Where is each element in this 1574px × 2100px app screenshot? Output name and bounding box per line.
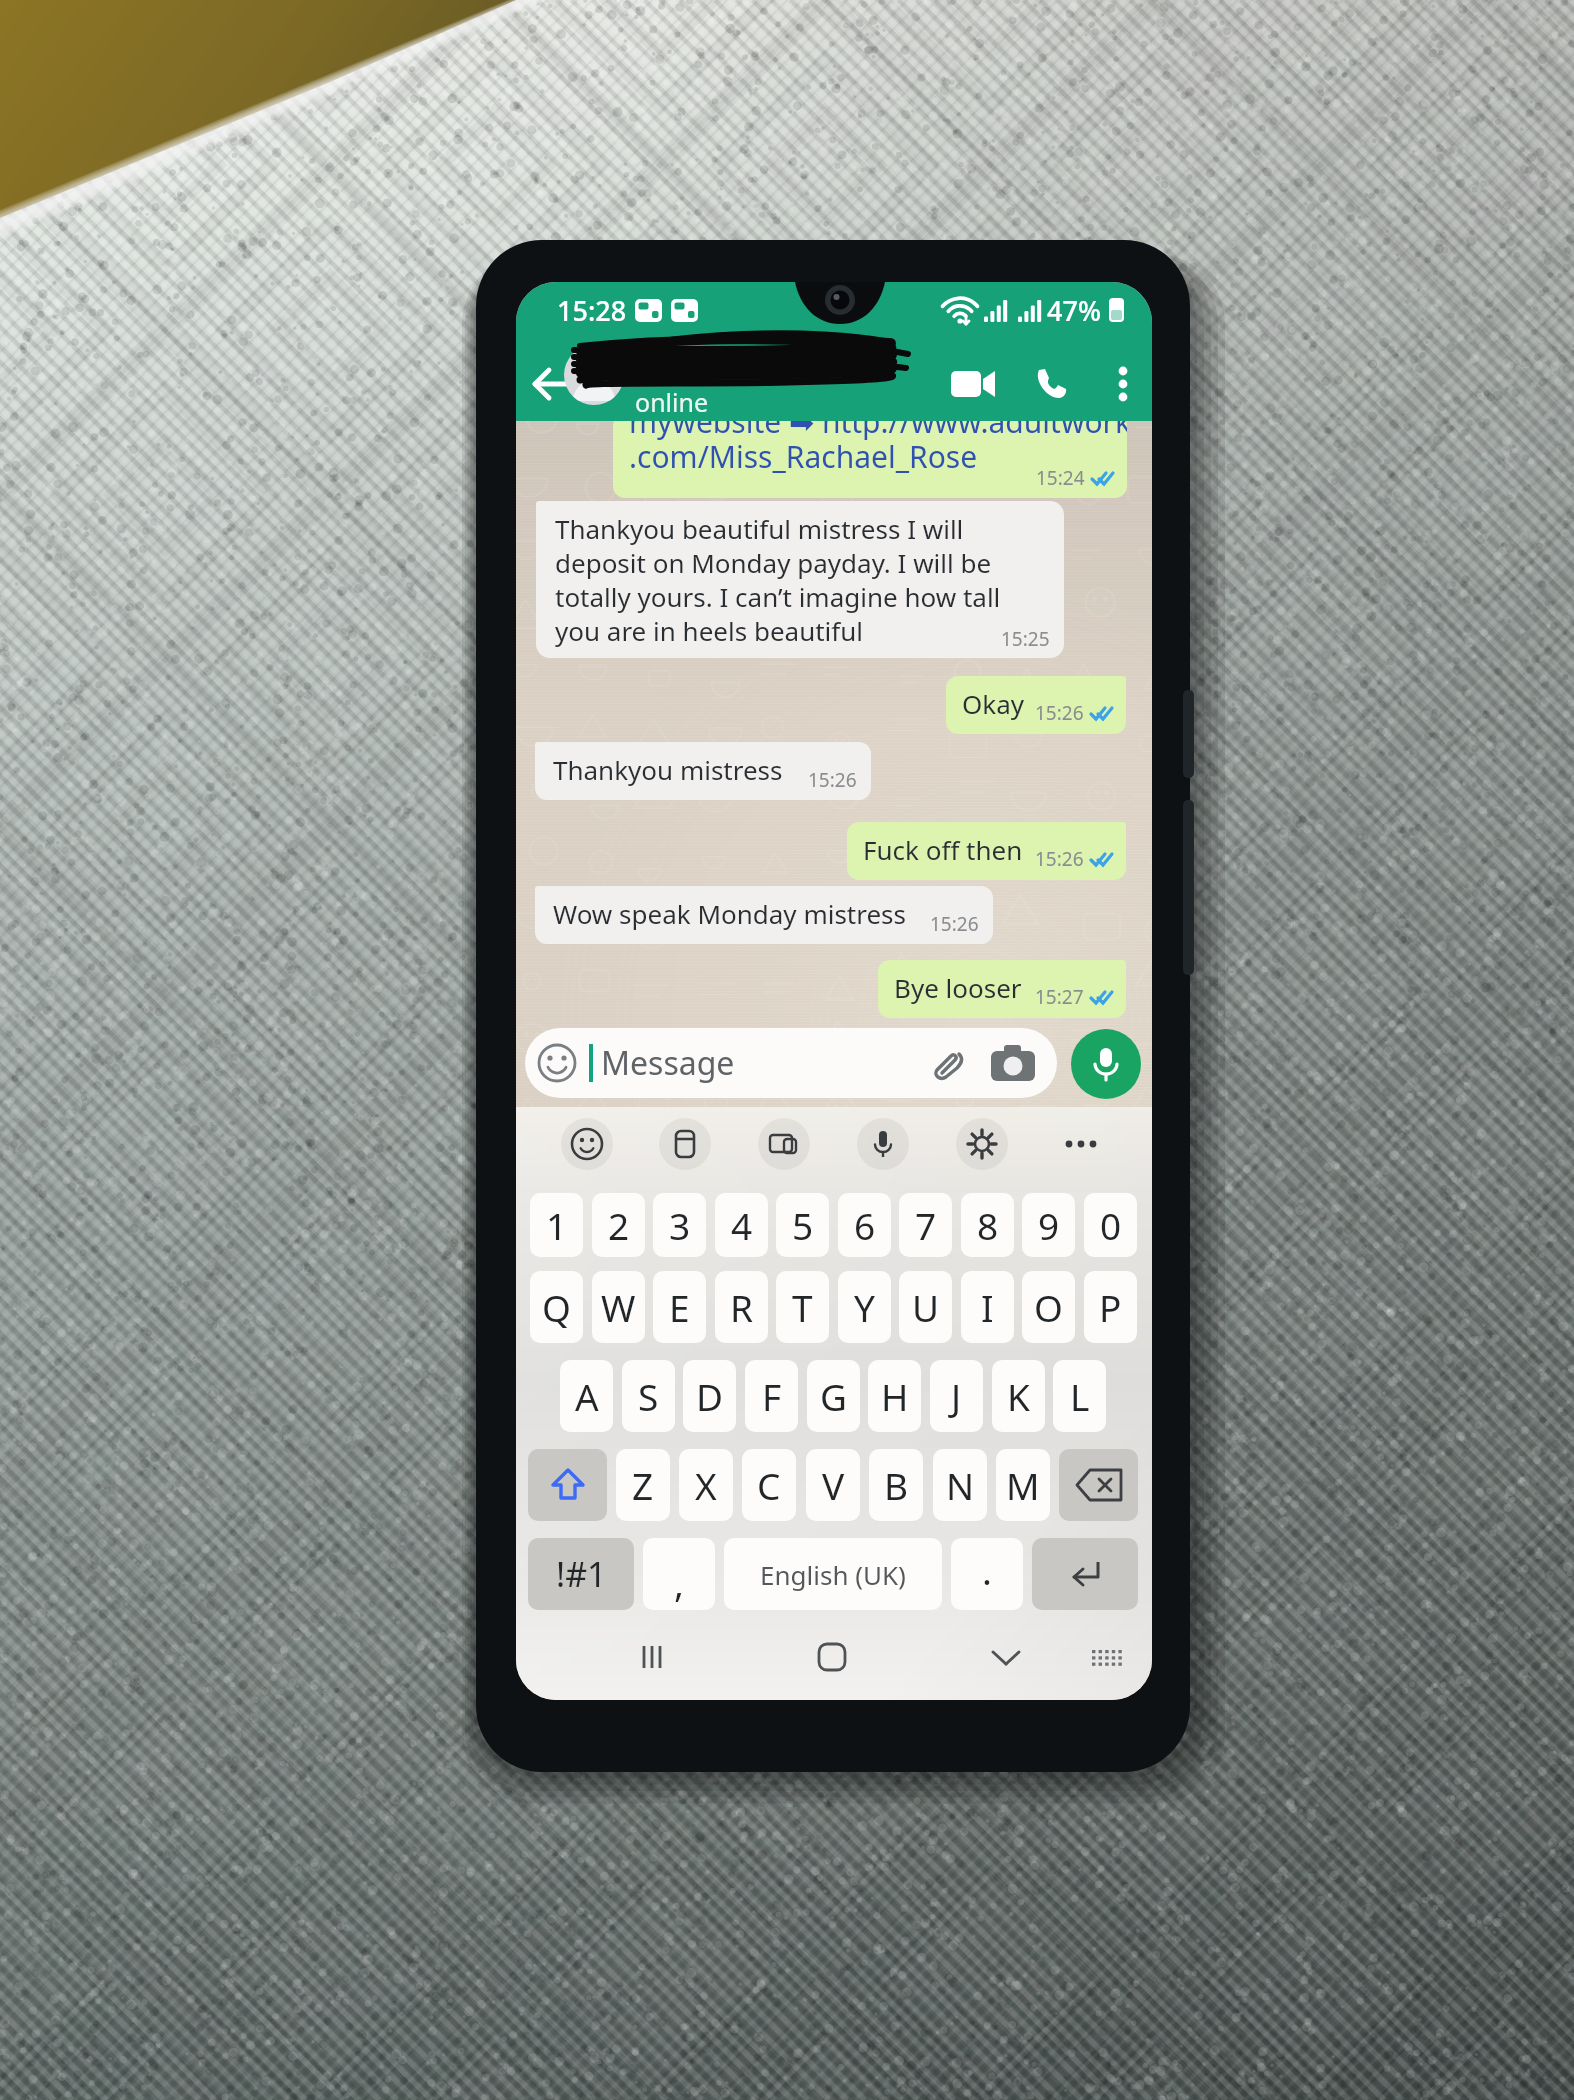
button[interactable]: F bbox=[745, 1360, 798, 1432]
staticText: J bbox=[951, 1371, 962, 1421]
button[interactable]: Enter bbox=[1032, 1538, 1138, 1610]
button[interactable]: Keyboard tool bbox=[538, 1107, 636, 1180]
staticText: W bbox=[601, 1282, 636, 1332]
button[interactable]: Hide keyboard bbox=[966, 1632, 1046, 1682]
button[interactable]: Recents bbox=[612, 1632, 692, 1682]
button[interactable]: 2 bbox=[592, 1193, 645, 1257]
button[interactable]: 7 bbox=[899, 1193, 952, 1257]
button[interactable]: N bbox=[933, 1449, 987, 1521]
staticText: 15:28 bbox=[557, 292, 627, 329]
staticText: . bbox=[982, 1545, 992, 1595]
button[interactable]: Shift bbox=[528, 1449, 607, 1521]
staticText: K bbox=[1007, 1371, 1030, 1421]
button[interactable]: Back bbox=[522, 358, 582, 410]
button[interactable]: 5 bbox=[776, 1193, 829, 1257]
button[interactable]: Keyboard layout bbox=[1066, 1632, 1146, 1682]
staticText: Q bbox=[542, 1282, 571, 1332]
button[interactable]: 9 bbox=[1022, 1193, 1075, 1257]
button[interactable]: L bbox=[1053, 1360, 1106, 1432]
button[interactable]: mywebsite ➡ http://www.adultwork bbox=[613, 414, 1127, 498]
button[interactable]: Bye looser bbox=[878, 960, 1126, 1018]
staticText: L bbox=[1070, 1371, 1090, 1421]
staticText: mywebsite ➡ http://www.adultwork bbox=[629, 414, 1127, 442]
button[interactable]: Backspace bbox=[1059, 1449, 1138, 1521]
staticText: F bbox=[762, 1371, 782, 1421]
button[interactable]: 6 bbox=[838, 1193, 891, 1257]
staticText: .com/Miss_Rachael_Rose bbox=[629, 436, 978, 477]
button[interactable]: B bbox=[869, 1449, 923, 1521]
button[interactable]: G bbox=[807, 1360, 860, 1432]
button[interactable]: Keyboard tool bbox=[833, 1107, 932, 1180]
button[interactable]: Keyboard tool bbox=[932, 1107, 1031, 1180]
staticText: online bbox=[635, 385, 709, 419]
button[interactable]: I bbox=[961, 1271, 1014, 1343]
button[interactable]: Q bbox=[530, 1271, 583, 1343]
button[interactable]: Thankyou mistress bbox=[535, 742, 871, 800]
button[interactable]: Thankyou beautiful mistress I will depos… bbox=[536, 501, 1064, 658]
button[interactable]: R bbox=[715, 1271, 768, 1343]
button[interactable]: Keyboard tool bbox=[1031, 1107, 1130, 1180]
staticText: U bbox=[912, 1282, 940, 1332]
button[interactable]: , bbox=[643, 1538, 715, 1610]
button[interactable]: J bbox=[930, 1360, 983, 1432]
button[interactable]: Home bbox=[792, 1632, 872, 1682]
staticText: P bbox=[1099, 1282, 1122, 1332]
staticText: 9 bbox=[1038, 1200, 1060, 1250]
staticText: English (UK) bbox=[760, 1557, 906, 1592]
button[interactable]: X bbox=[679, 1449, 733, 1521]
staticText: 15:26 bbox=[808, 767, 857, 793]
button[interactable]: Message bbox=[525, 1028, 1057, 1098]
button[interactable]: More options bbox=[1102, 358, 1144, 410]
button[interactable]: M bbox=[996, 1449, 1050, 1521]
staticText: A bbox=[575, 1371, 599, 1421]
button[interactable]: Voice message bbox=[1071, 1029, 1141, 1099]
button[interactable]: Keyboard tool bbox=[636, 1107, 734, 1180]
button[interactable]: English (UK) bbox=[724, 1538, 942, 1610]
button[interactable]: . bbox=[951, 1538, 1023, 1610]
staticText: 15:27 bbox=[1035, 984, 1084, 1010]
button[interactable]: Y bbox=[838, 1271, 891, 1343]
button[interactable]: U bbox=[899, 1271, 952, 1343]
button[interactable]: A bbox=[560, 1360, 613, 1432]
button[interactable]: 0 bbox=[1084, 1193, 1137, 1257]
button[interactable]: O bbox=[1022, 1271, 1075, 1343]
staticText: T bbox=[792, 1282, 813, 1332]
button[interactable]: Video call bbox=[944, 360, 1002, 408]
staticText: , bbox=[674, 1557, 684, 1607]
button[interactable] bbox=[562, 344, 932, 424]
button[interactable]: 3 bbox=[653, 1193, 706, 1257]
button[interactable]: K bbox=[992, 1360, 1045, 1432]
button[interactable]: P bbox=[1084, 1271, 1137, 1343]
button[interactable]: S bbox=[622, 1360, 675, 1432]
staticText: 7 bbox=[915, 1200, 937, 1250]
button[interactable]: Fuck off then bbox=[847, 822, 1126, 880]
button[interactable]: V bbox=[806, 1449, 860, 1521]
button[interactable]: 4 bbox=[715, 1193, 768, 1257]
button[interactable]: 8 bbox=[961, 1193, 1014, 1257]
staticText: 1 bbox=[546, 1200, 568, 1250]
button[interactable]: Okay bbox=[946, 676, 1126, 734]
button[interactable]: W bbox=[592, 1271, 645, 1343]
staticText: O bbox=[1034, 1282, 1063, 1332]
staticText: X bbox=[695, 1460, 717, 1510]
button[interactable]: Call bbox=[1024, 358, 1080, 410]
button[interactable]: E bbox=[653, 1271, 706, 1343]
button[interactable]: C bbox=[742, 1449, 796, 1521]
button[interactable]: 1 bbox=[530, 1193, 583, 1257]
staticText: R bbox=[730, 1282, 754, 1332]
staticText: Okay bbox=[962, 686, 1025, 721]
button[interactable]: H bbox=[868, 1360, 921, 1432]
staticText: M bbox=[1006, 1460, 1040, 1510]
button[interactable]: Z bbox=[616, 1449, 670, 1521]
staticText: Y bbox=[854, 1282, 875, 1332]
button[interactable]: !#1 bbox=[528, 1538, 634, 1610]
staticText: 0 bbox=[1100, 1200, 1122, 1250]
staticText: C bbox=[757, 1460, 781, 1510]
staticText: Thankyou beautiful mistress I will depos… bbox=[555, 511, 1050, 648]
button[interactable]: T bbox=[776, 1271, 829, 1343]
button[interactable]: D bbox=[683, 1360, 736, 1432]
button[interactable]: Keyboard tool bbox=[734, 1107, 833, 1180]
staticText: Thankyou mistress bbox=[553, 752, 783, 787]
staticText: D bbox=[696, 1371, 724, 1421]
button[interactable]: Wow speak Monday mistress bbox=[535, 886, 993, 944]
